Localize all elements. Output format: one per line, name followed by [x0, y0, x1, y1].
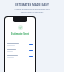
button[interactable] [5, 41, 35, 47]
button[interactable] [5, 53, 35, 59]
staticText: Create professional estimates and send t… [0, 8, 64, 14]
button[interactable] [5, 47, 35, 53]
staticText: Estimate Sent [5, 32, 35, 36]
staticText: ESTIMATES MADE EASY [0, 3, 64, 7]
